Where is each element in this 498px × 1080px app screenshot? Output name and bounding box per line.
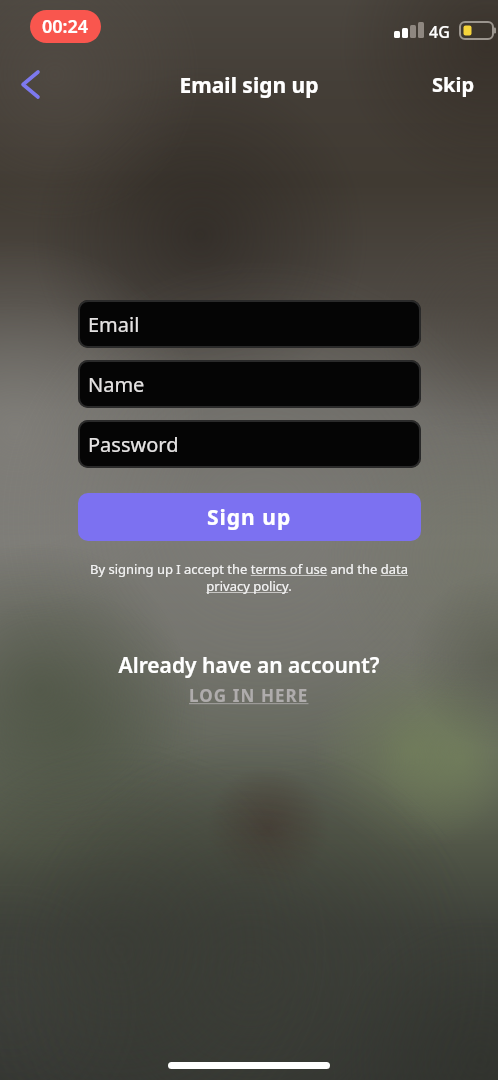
button[interactable]: Name: [78, 360, 421, 408]
staticText: Email: [88, 311, 140, 338]
button[interactable]: LOG IN HERE: [189, 684, 309, 707]
staticText: Name: [88, 371, 145, 398]
staticText: 4G: [429, 21, 450, 43]
staticText: Email sign up: [0, 71, 498, 100]
button[interactable]: By signing up I accept the terms of use …: [90, 560, 408, 595]
staticText: Already have an account?: [0, 651, 498, 680]
staticText: LOG IN HERE: [189, 684, 309, 707]
button[interactable]: [8, 62, 52, 106]
button[interactable]: Sign up: [78, 493, 421, 541]
button[interactable]: Email: [78, 300, 421, 348]
staticText: 00:24: [42, 14, 89, 39]
staticText: Password: [88, 431, 179, 458]
staticText: Skip: [432, 71, 475, 98]
button[interactable]: Skip: [420, 62, 498, 107]
staticText: Sign up: [207, 503, 292, 532]
button[interactable]: Password: [78, 420, 421, 468]
